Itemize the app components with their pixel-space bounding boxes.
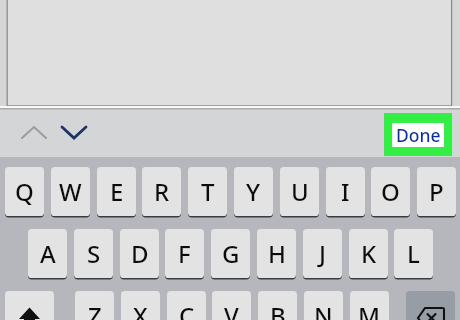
button[interactable]: X — [121, 291, 160, 320]
staticText: V — [224, 299, 239, 320]
button[interactable]: Next field — [50, 110, 98, 157]
staticText: S — [87, 237, 101, 270]
button[interactable]: V — [212, 291, 251, 320]
button[interactable]: P — [417, 167, 456, 216]
button[interactable]: Y — [234, 167, 273, 216]
staticText: D — [131, 237, 149, 270]
button[interactable]: B — [258, 291, 297, 320]
staticText: N — [314, 299, 333, 320]
staticText: A — [40, 237, 56, 270]
staticText: Q — [15, 175, 34, 208]
staticText: K — [361, 237, 377, 270]
button[interactable]: T — [188, 167, 227, 216]
staticText: Y — [246, 175, 261, 208]
button[interactable]: O — [371, 167, 410, 216]
button[interactable]: Q — [5, 167, 44, 216]
button[interactable]: Previous field — [10, 110, 58, 157]
button[interactable]: R — [142, 167, 181, 216]
staticText: L — [407, 237, 420, 270]
button[interactable]: D — [120, 229, 159, 278]
staticText: G — [222, 237, 240, 270]
button[interactable]: Shift — [5, 291, 54, 320]
staticText: B — [270, 299, 286, 320]
button[interactable]: Done — [384, 113, 452, 156]
button[interactable]: E — [97, 167, 136, 216]
button[interactable]: C — [167, 291, 206, 320]
button[interactable]: M — [350, 291, 389, 320]
staticText: P — [429, 175, 444, 208]
staticText: R — [154, 175, 170, 208]
staticText: Z — [88, 299, 102, 320]
button[interactable]: A — [28, 229, 67, 278]
button[interactable]: Backspace — [406, 291, 455, 320]
button[interactable]: H — [257, 229, 296, 278]
button[interactable]: Z — [75, 291, 114, 320]
button[interactable]: L — [394, 229, 433, 278]
button[interactable]: K — [349, 229, 388, 278]
staticText: F — [178, 237, 191, 270]
staticText: U — [291, 175, 309, 208]
button[interactable]: N — [304, 291, 343, 320]
button[interactable]: F — [165, 229, 204, 278]
button[interactable]: I — [326, 167, 365, 216]
button[interactable]: J — [303, 229, 342, 278]
button[interactable]: S — [74, 229, 113, 278]
staticText: O — [381, 175, 400, 208]
button[interactable]: W — [51, 167, 90, 216]
staticText: M — [358, 299, 381, 320]
staticText: J — [319, 237, 326, 270]
staticText: I — [341, 175, 350, 208]
button[interactable]: U — [280, 167, 319, 216]
staticText: W — [59, 175, 82, 208]
staticText: Done — [396, 123, 441, 147]
staticText: T — [201, 175, 215, 208]
button[interactable]: G — [211, 229, 250, 278]
staticText: C — [179, 299, 195, 320]
staticText: H — [268, 237, 286, 270]
staticText: E — [110, 175, 124, 208]
staticText: X — [133, 299, 148, 320]
